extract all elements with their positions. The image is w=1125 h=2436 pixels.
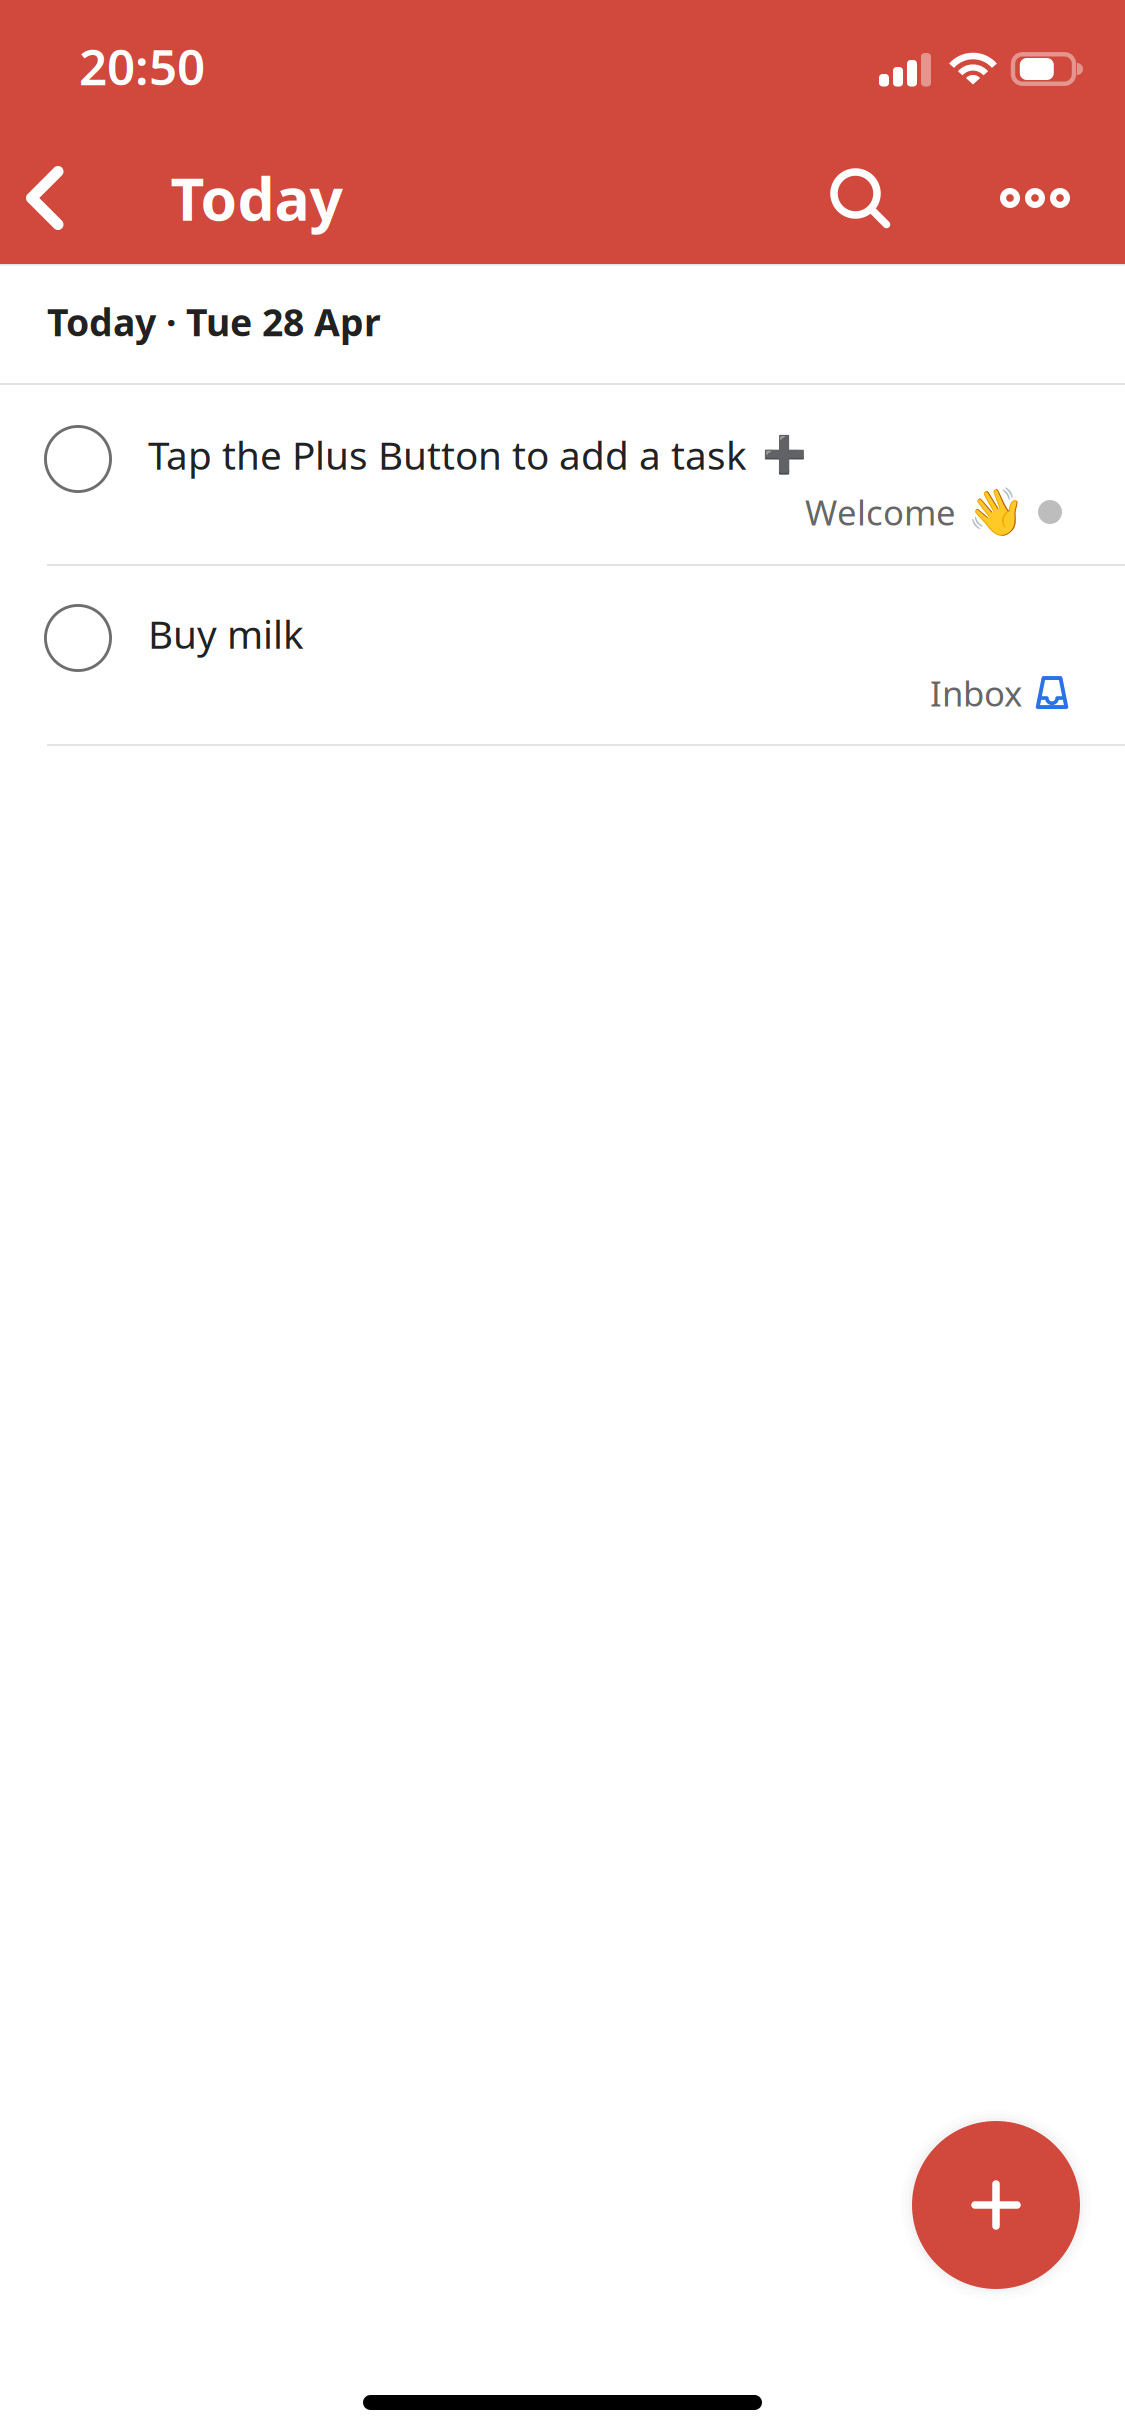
staticText: Buy milk [148,608,304,659]
button[interactable]: Today [90,132,366,264]
button[interactable]: Search [790,132,980,264]
staticText: Today · Tue 28 Apr [47,297,381,347]
button[interactable]: Add task [901,2110,1091,2300]
button[interactable]: Buy milk [0,566,1125,744]
staticText: 20:50 [79,33,205,99]
staticText: Tap the Plus Button to add a task [148,429,747,480]
staticText: ➕ [762,434,807,475]
staticText: Welcome [805,489,956,535]
button[interactable]: Back [0,132,90,264]
button[interactable]: More options [980,132,1125,264]
button[interactable]: Tap the Plus Button to add a task [0,385,1125,564]
staticText: Today [170,159,342,237]
staticText: Inbox [930,670,1022,716]
staticText: 👋 [967,485,1025,539]
